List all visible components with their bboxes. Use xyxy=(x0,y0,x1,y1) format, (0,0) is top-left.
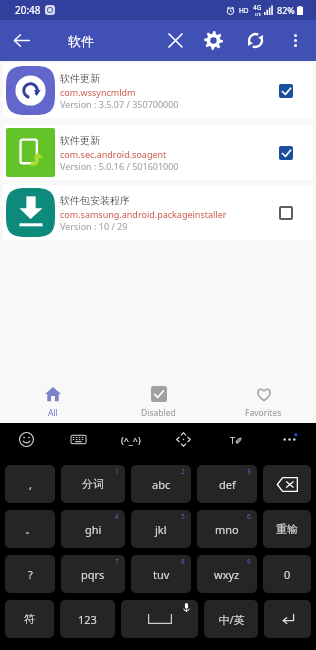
staticText: , xyxy=(29,477,32,492)
staticText: com.wssyncmldm xyxy=(60,86,136,98)
staticText: 8 xyxy=(181,557,185,566)
staticText: 4 xyxy=(115,512,119,521)
staticText: pqrs xyxy=(81,567,105,582)
staticText: LTE xyxy=(255,12,261,17)
button[interactable]: 软件包安装程序 xyxy=(3,185,313,240)
button[interactable]: Back xyxy=(0,20,42,61)
button[interactable]: mno xyxy=(197,510,257,548)
button[interactable]: Emoji xyxy=(0,423,52,456)
staticText: 123 xyxy=(78,612,97,627)
button[interactable]: 0 xyxy=(263,555,311,593)
staticText: 重输 xyxy=(276,522,298,536)
staticText: 分词 xyxy=(82,477,104,491)
staticText: 。 xyxy=(25,522,36,536)
button[interactable]: All xyxy=(0,383,106,422)
staticText: tuv xyxy=(153,567,170,582)
button[interactable]: 软件更新 xyxy=(3,63,313,118)
button[interactable]: tuv xyxy=(131,555,191,593)
staticText: jkl xyxy=(155,522,167,537)
button[interactable]: def xyxy=(197,465,257,503)
staticText: 中/英 xyxy=(218,612,245,627)
button[interactable] xyxy=(121,600,198,638)
button[interactable]: 重输 xyxy=(263,510,311,548)
staticText: 82% xyxy=(277,4,295,16)
staticText: Version : 5.0.16 / 501601000 xyxy=(60,160,179,172)
staticText: Favorites xyxy=(245,407,282,419)
button[interactable]: More options xyxy=(263,423,316,456)
button[interactable]: 。 xyxy=(5,510,55,548)
button[interactable]: ? xyxy=(5,555,55,593)
staticText: 5 xyxy=(181,512,185,521)
button[interactable]: wxyz xyxy=(197,555,257,593)
button[interactable]: Emoticons xyxy=(104,423,157,456)
button[interactable]: Move cursor xyxy=(157,423,210,456)
button[interactable]: 软件更新 xyxy=(3,125,313,180)
button[interactable]: 分词 xyxy=(61,465,125,503)
staticText: 符 xyxy=(24,612,35,626)
button[interactable]: Keyboard xyxy=(52,423,104,456)
button[interactable]: Refresh xyxy=(232,20,278,61)
button[interactable] xyxy=(263,465,311,503)
button[interactable]: ghi xyxy=(61,510,125,548)
staticText: ghi xyxy=(85,522,102,537)
button[interactable]: Close xyxy=(156,20,194,61)
button[interactable]: jkl xyxy=(131,510,191,548)
staticText: 7 xyxy=(115,557,119,566)
staticText: T✐ xyxy=(230,434,243,446)
button[interactable]: , xyxy=(5,465,55,503)
staticText: HD xyxy=(239,6,249,15)
staticText: wxyz xyxy=(214,567,240,582)
button[interactable]: Disabled xyxy=(106,383,211,422)
button[interactable] xyxy=(264,600,311,638)
staticText: 软件 xyxy=(68,33,94,49)
button[interactable]: 符 xyxy=(5,600,54,638)
staticText: abc xyxy=(152,477,171,492)
staticText: All xyxy=(48,407,58,419)
staticText: ? xyxy=(28,567,33,582)
button[interactable]: More options xyxy=(278,20,312,61)
staticText: 20:48 xyxy=(15,3,41,17)
staticText: 3 xyxy=(247,467,251,476)
button[interactable]: Settings xyxy=(194,20,232,61)
button[interactable]: abc xyxy=(131,465,191,503)
staticText: (^_^) xyxy=(121,434,141,446)
button[interactable]: 中/英 xyxy=(204,600,258,638)
staticText: 1 xyxy=(115,467,119,476)
button[interactable]: Text editing xyxy=(210,423,263,456)
staticText: com.sec.android.soagent xyxy=(60,148,167,160)
staticText: Version : 10 / 29 xyxy=(60,220,128,232)
staticText: 软件包安装程序 xyxy=(60,194,130,207)
staticText: 9 xyxy=(247,557,251,566)
staticText: 2 xyxy=(181,467,185,476)
button[interactable]: Select app xyxy=(264,185,308,240)
staticText: 软件更新 xyxy=(60,72,100,85)
button[interactable]: pqrs xyxy=(61,555,125,593)
staticText: mno xyxy=(215,522,239,537)
staticText: com.samsung.android.packageinstaller xyxy=(60,208,227,220)
staticText: 0 xyxy=(284,567,291,582)
staticText: Version : 3.5.07 / 350700000 xyxy=(60,98,179,110)
staticText: Disabled xyxy=(141,407,176,419)
staticText: 6 xyxy=(247,512,251,521)
button[interactable]: Select app xyxy=(264,125,308,180)
button[interactable]: Select app xyxy=(264,63,308,118)
staticText: def xyxy=(219,477,236,492)
staticText: 4G xyxy=(253,3,262,12)
button[interactable]: Favorites xyxy=(211,383,316,422)
button[interactable]: 123 xyxy=(60,600,115,638)
staticText: 软件更新 xyxy=(60,134,100,147)
